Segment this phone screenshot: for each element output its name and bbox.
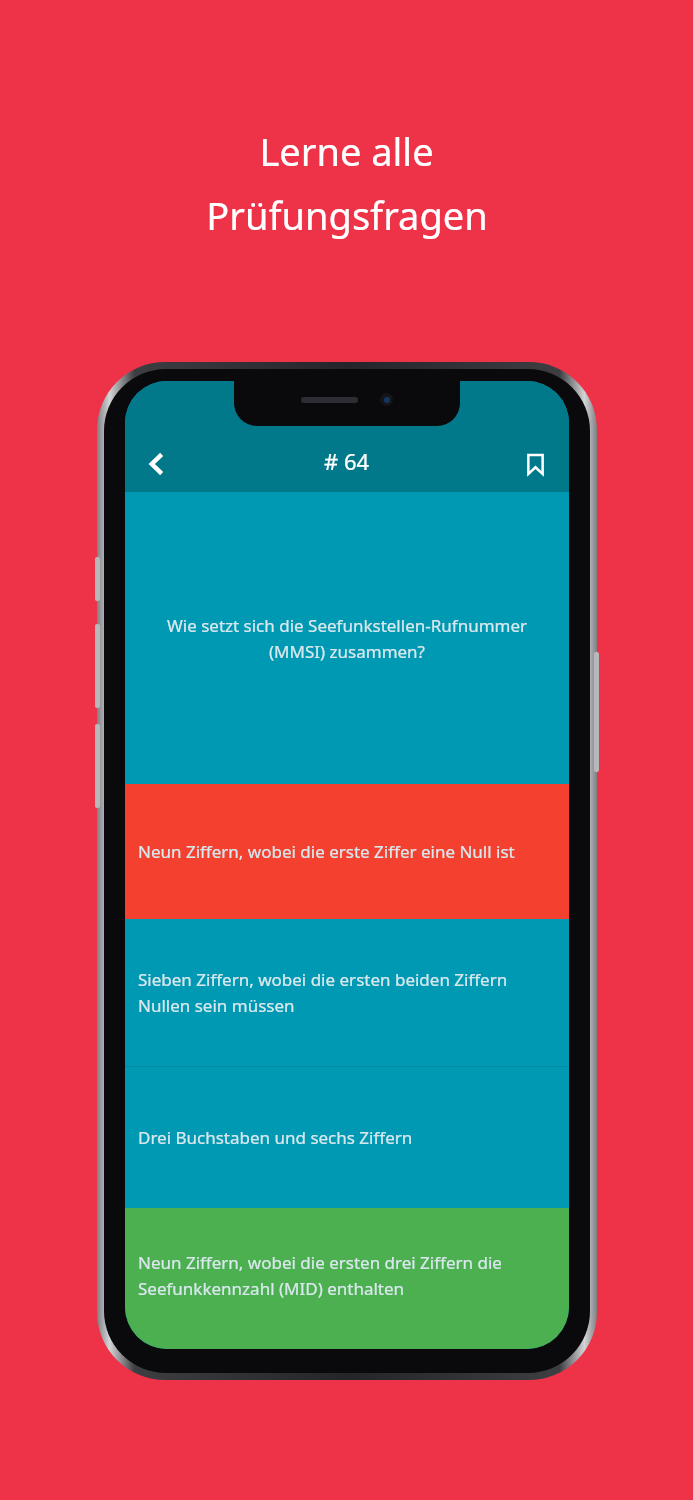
- button[interactable]: Wie setzt sich die Seefunkstellen-Rufnum…: [125, 492, 569, 784]
- staticText: Neun Ziffern, wobei die ersten drei Ziff…: [138, 1251, 561, 1300]
- button[interactable]: Sieben Ziffern, wobei die ersten beiden …: [125, 919, 569, 1066]
- button[interactable]: Bookmark: [507, 436, 563, 492]
- staticText: Neun Ziffern, wobei die erste Ziffer ein…: [138, 840, 515, 863]
- staticText: Prüfungsfragen: [206, 189, 488, 241]
- button[interactable]: Drei Buchstaben und sechs Ziffern: [125, 1067, 569, 1208]
- staticText: Sieben Ziffern, wobei die ersten beiden …: [138, 968, 561, 1017]
- staticText: # 64: [324, 446, 370, 476]
- button[interactable]: Neun Ziffern, wobei die ersten drei Ziff…: [125, 1208, 569, 1349]
- staticText: Wie setzt sich die Seefunkstellen-Rufnum…: [137, 614, 557, 663]
- button[interactable]: Neun Ziffern, wobei die erste Ziffer ein…: [125, 784, 569, 919]
- button[interactable]: Back: [129, 436, 185, 492]
- staticText: Drei Buchstaben und sechs Ziffern: [138, 1126, 413, 1149]
- staticText: Lerne alle: [259, 125, 434, 177]
